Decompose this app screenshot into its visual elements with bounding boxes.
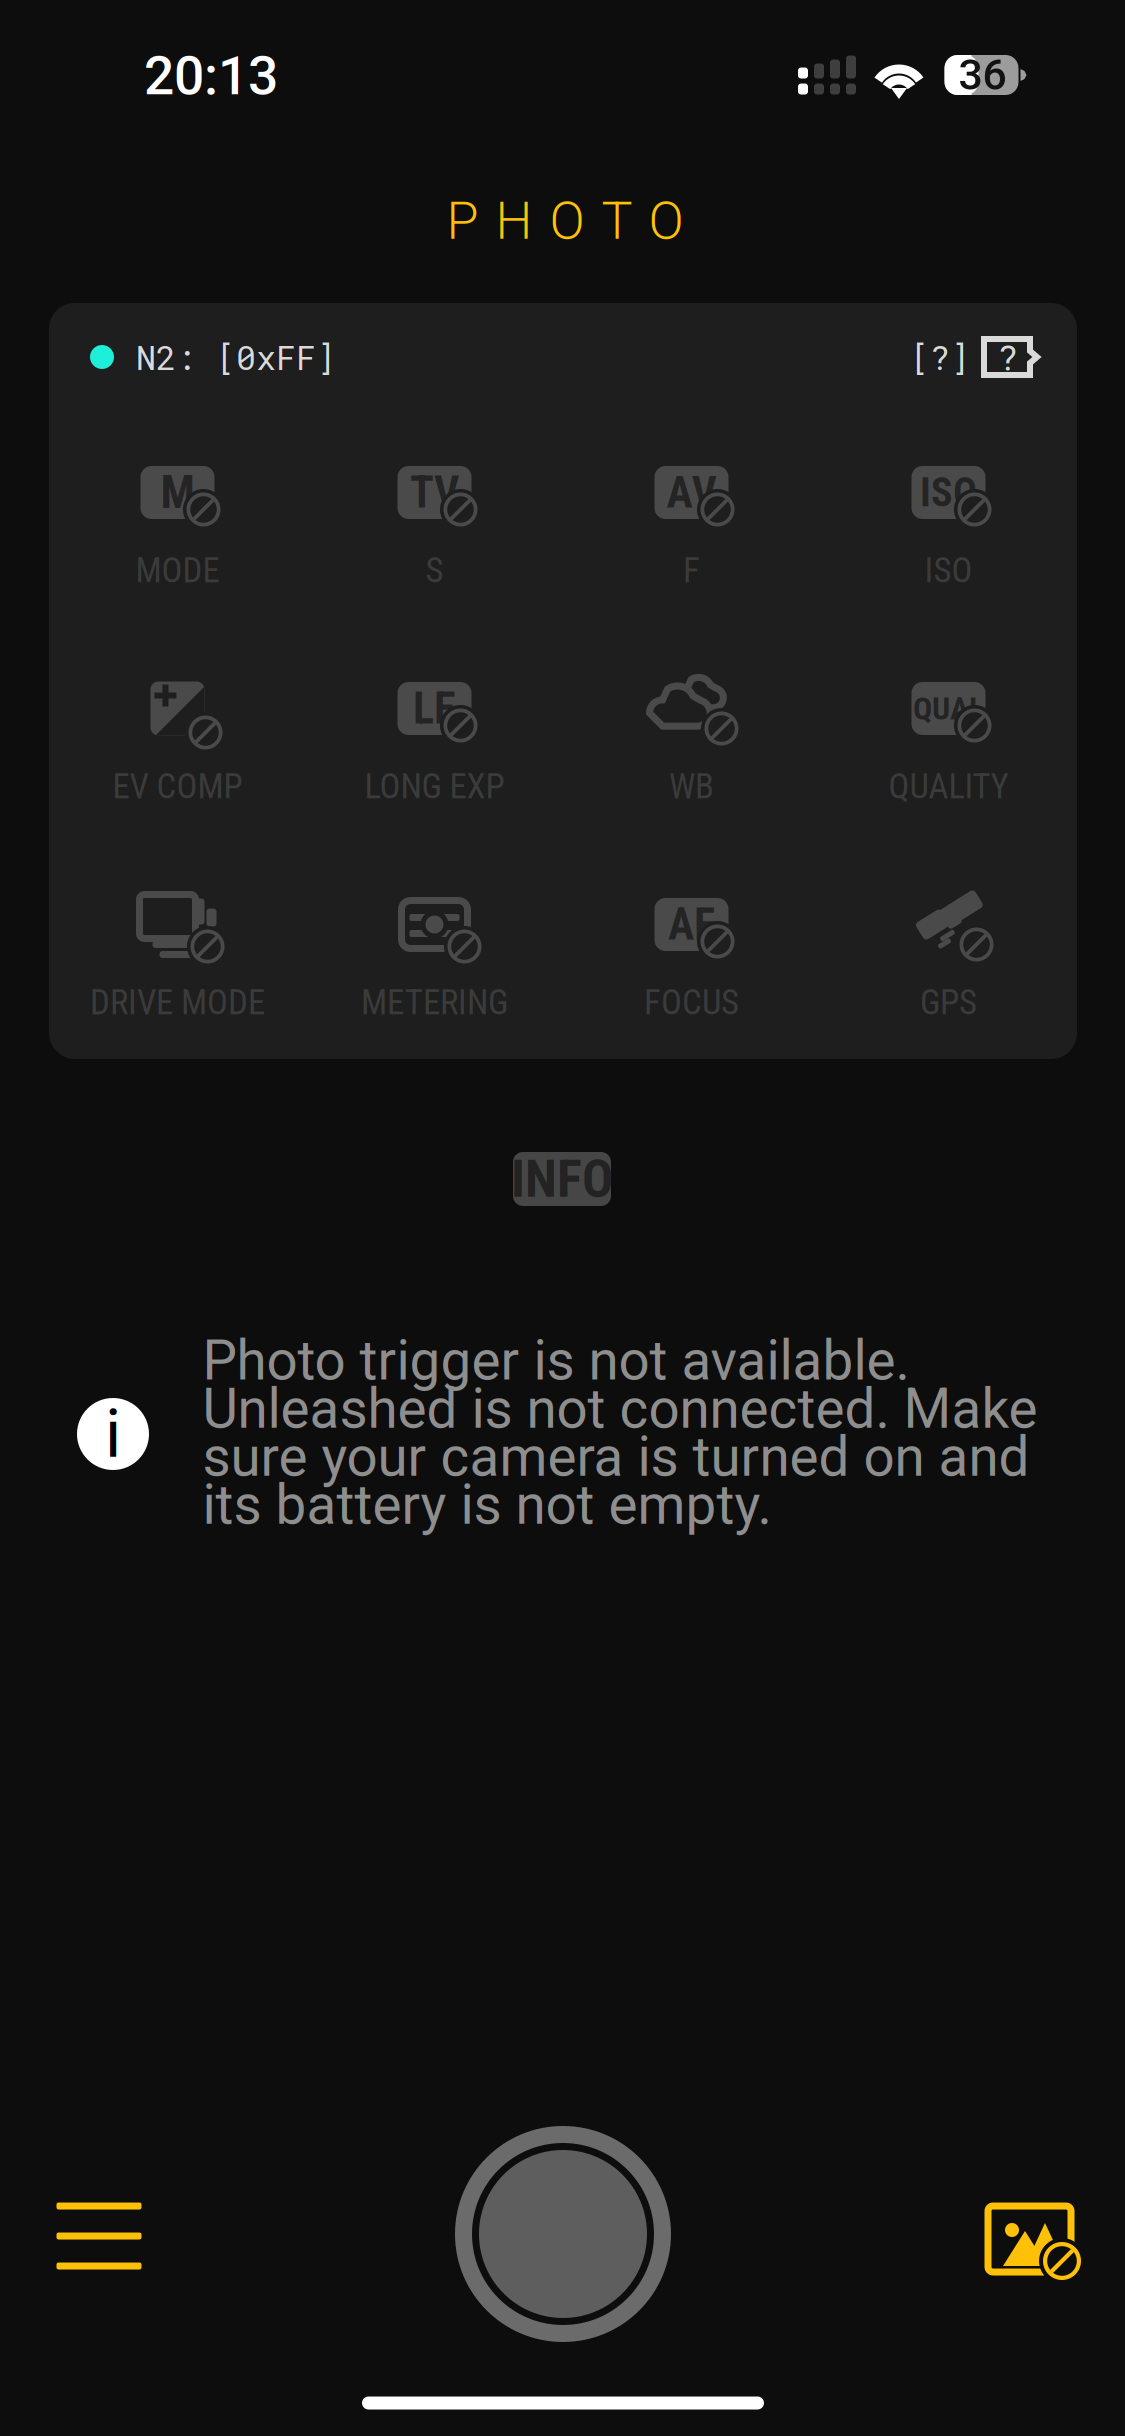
staticText: EV COMP — [112, 766, 242, 807]
staticText: GPS — [920, 982, 977, 1023]
staticText: LE — [413, 683, 456, 734]
staticText: INFO — [511, 1148, 613, 1209]
staticText: TV — [410, 467, 459, 518]
staticText: FOCUS — [644, 982, 739, 1023]
button[interactable]: AF — [563, 891, 820, 1018]
staticText: i — [105, 1395, 121, 1473]
staticText: AF — [668, 899, 715, 950]
staticText: ISO — [920, 469, 977, 516]
staticText: F — [683, 550, 700, 591]
button[interactable]: Menu — [44, 2181, 154, 2291]
staticText: ISO — [924, 550, 972, 591]
button[interactable]: AV — [563, 459, 820, 586]
staticText: DRIVE MODE — [90, 982, 265, 1023]
button[interactable]: DRIVE MODE — [49, 891, 306, 1018]
button[interactable]: Shutter — [450, 2121, 676, 2347]
button[interactable]: INFO — [513, 1152, 611, 1206]
staticText: QUALITY — [888, 766, 1008, 807]
button[interactable]: LE — [306, 675, 563, 802]
staticText: S — [425, 550, 443, 591]
button[interactable]: TV — [306, 459, 563, 586]
button[interactable]: ISO — [820, 459, 1077, 586]
staticText: 36 — [958, 50, 1006, 100]
staticText: QUAL — [913, 690, 984, 727]
button[interactable]: M — [49, 459, 306, 586]
staticText: ? — [997, 334, 1018, 380]
staticText: M — [160, 466, 194, 519]
staticText: Photo trigger is not available. Unleashe… — [202, 1329, 1037, 1537]
staticText: AV — [666, 467, 716, 518]
staticText: WB — [669, 766, 714, 807]
button[interactable]: Gallery — [988, 2206, 1108, 2306]
staticText: METERING — [361, 982, 508, 1023]
staticText: 20:13 — [144, 45, 278, 107]
button[interactable]: QUAL — [820, 675, 1077, 802]
button[interactable]: EV COMP — [49, 675, 306, 802]
staticText: PHOTO — [446, 190, 683, 251]
button[interactable]: GPS — [820, 891, 1077, 1018]
button[interactable]: METERING — [306, 891, 563, 1018]
staticText: [?] — [910, 335, 970, 379]
button[interactable]: WB — [563, 675, 820, 802]
staticText: LONG EXP — [364, 766, 504, 807]
staticText: N2: [0xFF] — [136, 335, 336, 379]
staticText: MODE — [135, 550, 219, 591]
